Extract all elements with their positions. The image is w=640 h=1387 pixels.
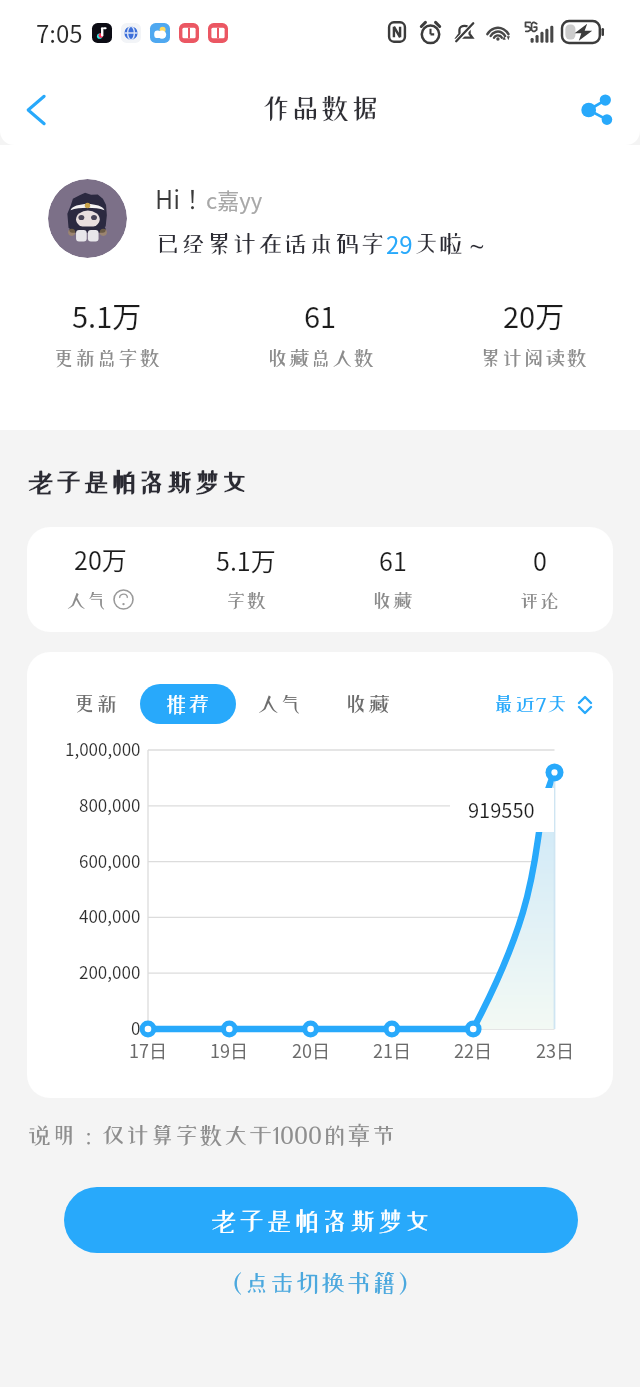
staticText: 20万	[503, 294, 565, 336]
button[interactable]: 收藏	[324, 684, 412, 724]
staticText: 说明：仅计算字数大于1000的章节	[27, 1123, 396, 1147]
staticText: 0	[131, 1015, 141, 1040]
button[interactable]: （点击切换书籍）	[218, 1270, 423, 1295]
button[interactable]: 最近7天	[493, 694, 595, 715]
staticText: 29	[386, 226, 413, 261]
button[interactable]: Share	[570, 78, 628, 136]
staticText: 20万	[74, 541, 127, 577]
staticText: 作品数据	[261, 93, 380, 122]
staticText: 评论	[519, 590, 560, 610]
staticText: 收藏总人数	[267, 348, 375, 369]
staticText: 天啦～	[413, 231, 490, 256]
staticText: 61	[379, 542, 407, 578]
button[interactable]: 推荐	[140, 684, 236, 724]
staticText: 5.1万	[72, 294, 142, 336]
staticText: Hi！	[155, 180, 206, 216]
staticText: 人气	[257, 693, 303, 715]
staticText: 800,000	[79, 792, 141, 817]
staticText: 累计阅读数	[480, 348, 588, 369]
staticText: c嘉yy	[206, 183, 263, 215]
staticText: 老子是帕洛斯梦女	[210, 1207, 432, 1234]
staticText: 19日	[210, 1037, 248, 1063]
staticText: 人气	[66, 590, 107, 610]
staticText: 17日	[129, 1037, 167, 1063]
button[interactable]: 更新	[52, 684, 140, 724]
staticText: 21日	[373, 1037, 411, 1063]
staticText: 5.1万	[216, 542, 276, 578]
staticText: 已经累计在话本码字	[155, 231, 386, 256]
staticText: 23日	[536, 1037, 574, 1063]
button[interactable]: Back	[10, 78, 68, 136]
staticText: 919550	[468, 795, 535, 824]
staticText: 7:05	[36, 15, 83, 50]
button[interactable]: 人气	[236, 684, 324, 724]
staticText: 0	[533, 542, 547, 578]
staticText: 收藏	[372, 590, 413, 610]
staticText: 600,000	[79, 848, 141, 873]
staticText: 更新总字数	[53, 348, 161, 369]
staticText: 61	[304, 294, 337, 336]
button[interactable]: Profile avatar	[48, 179, 127, 258]
staticText: 1,000,000	[65, 736, 141, 761]
staticText: 收藏	[345, 693, 391, 715]
staticText: 200,000	[79, 959, 141, 984]
staticText: 400,000	[79, 903, 141, 928]
staticText: 22日	[454, 1037, 492, 1063]
staticText: 推荐	[165, 693, 211, 715]
staticText: 20日	[292, 1037, 330, 1063]
button[interactable]: 老子是帕洛斯梦女	[64, 1187, 578, 1253]
staticText: 字数	[226, 590, 267, 610]
staticText: 老子是帕洛斯梦女	[27, 468, 249, 495]
staticText: 最近7天	[493, 694, 568, 715]
staticText: 更新	[73, 693, 119, 715]
